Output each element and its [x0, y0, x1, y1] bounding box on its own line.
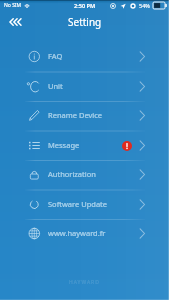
button[interactable]: FAQ [0, 43, 169, 73]
staticText: www.hayward.fr [48, 228, 106, 238]
button[interactable]: Software Update [0, 191, 169, 221]
staticText: Unit [48, 81, 63, 91]
button[interactable]: www.hayward.fr [0, 220, 169, 250]
button[interactable]: Authorization [0, 161, 169, 191]
staticText: Setting [68, 15, 102, 29]
button[interactable]: Rename Device [0, 102, 169, 132]
button[interactable]: Unit [0, 73, 169, 103]
staticText: FAQ [48, 51, 63, 61]
staticText: 2:50 PM [74, 2, 96, 10]
staticText: Rename Device [48, 110, 103, 120]
staticText: No SIM [4, 2, 22, 9]
staticText: Authorization [48, 169, 96, 179]
staticText: Message [48, 140, 80, 150]
staticText: Software Update [48, 199, 108, 209]
staticText: 54% [139, 2, 150, 9]
button[interactable]: Back [0, 11, 28, 32]
button[interactable]: Message [0, 132, 169, 162]
staticText: HAYWARD [69, 279, 100, 286]
